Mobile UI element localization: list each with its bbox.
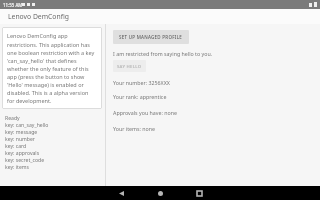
staticText: key: approvals (5, 150, 40, 157)
staticText: SET UP MANAGED PROFILE (119, 34, 183, 40)
staticText: key: card (5, 143, 27, 150)
staticText: Ready (5, 115, 20, 122)
staticText: Your items: none (113, 125, 156, 132)
button[interactable]: SET UP MANAGED PROFILE (113, 30, 189, 44)
button[interactable]: SAY HELLO (113, 60, 146, 72)
button[interactable]: Recent apps (188, 186, 210, 200)
staticText: key: secret_code (5, 157, 45, 164)
staticText: key: can_say_hello (5, 122, 49, 129)
button[interactable]: Home (149, 186, 171, 200)
staticText: SAY HELLO (117, 63, 142, 69)
staticText: Lenovo DemConfig app restrictions. This … (7, 32, 97, 104)
staticText: 11:55 AM (3, 2, 23, 8)
staticText: key: items (5, 164, 30, 171)
staticText: Approvals you have: none (113, 109, 178, 116)
staticText: Lenovo DemConfig (8, 12, 69, 21)
staticText: Your number: 3256XXX (113, 79, 170, 86)
staticText: key: number (5, 136, 35, 143)
button[interactable]: Back (110, 186, 132, 200)
staticText: Your rank: apprentice (113, 93, 167, 100)
staticText: I am restricted from saying hello to you… (113, 50, 213, 57)
staticText: key: message (5, 129, 38, 136)
